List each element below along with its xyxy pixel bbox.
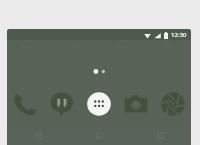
button[interactable]: Camera [117, 87, 154, 121]
button[interactable]: Hangouts [43, 87, 80, 121]
button[interactable]: Photos [154, 87, 191, 121]
button[interactable]: Apps [80, 87, 117, 121]
button[interactable]: Phone [7, 87, 43, 121]
staticText: 12:30 [171, 31, 187, 39]
